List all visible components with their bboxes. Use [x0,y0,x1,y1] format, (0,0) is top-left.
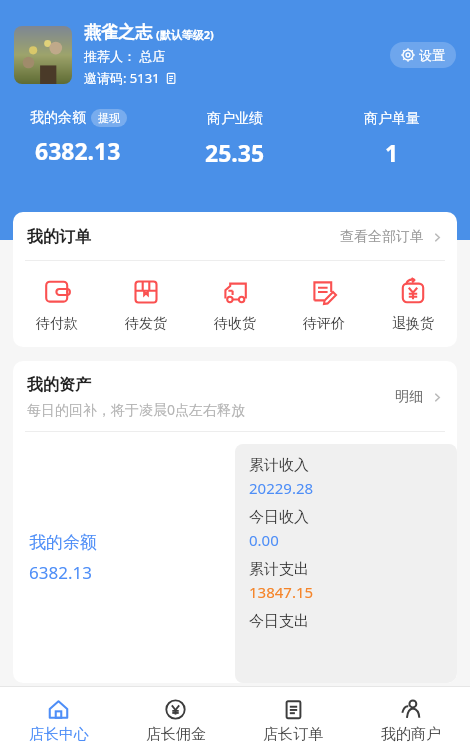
staticText: 累计收入 [249,456,309,475]
staticText: 待收货 [214,315,256,333]
staticText: (默认等级2) [156,27,214,42]
staticText: 明细 [395,388,423,406]
button[interactable]: 我的订单 [13,212,457,260]
staticText: 退换货 [392,315,434,333]
button[interactable]: 待发货 [101,277,190,333]
button[interactable]: 商户单量 [313,109,470,168]
staticText: 25.35 [205,137,265,168]
staticText: 我的订单 [27,227,91,247]
staticText: 推荐人： 总店 [84,47,166,65]
staticText: 今日支出 [249,612,309,631]
button[interactable]: 店长订单 [234,687,352,755]
staticText: 我的资产 [27,375,91,395]
button[interactable]: 我的资产 [13,361,457,431]
staticText: 13847.15 [249,582,314,602]
button[interactable]: 店长中心 [0,687,117,755]
button[interactable]: 待评价 [279,277,368,333]
button[interactable]: 待付款 [13,277,101,333]
staticText: 我的余额 [29,532,97,553]
staticText: 商户业绩 [207,110,263,128]
staticText: 今日收入 [249,508,309,527]
staticText: 待评价 [303,315,345,333]
staticText: 设置 [419,47,445,63]
button[interactable]: 商户业绩 [156,109,313,168]
staticText: 待发货 [125,315,167,333]
staticText: 店长中心 [29,725,89,744]
staticText: 待付款 [36,315,78,333]
staticText: 6382.13 [35,135,121,166]
staticText: 查看全部订单 [340,228,424,246]
staticText: 1 [385,137,399,168]
staticText: 0.00 [249,530,279,550]
staticText: 累计支出 [249,560,309,579]
staticText: 提现 [98,111,120,125]
button[interactable]: 待收货 [190,277,279,333]
staticText: 每日的回补，将于凌晨0点左右释放 [27,400,246,419]
button[interactable]: 退换货 [368,277,457,333]
staticText: 我的商户 [381,725,441,744]
staticText: 6382.13 [29,561,92,584]
button[interactable]: 店长佣金 [117,687,234,755]
staticText: 商户单量 [364,110,420,128]
staticText: 店长佣金 [146,725,206,744]
staticText: 邀请码: 5131 [84,69,160,87]
staticText: 20229.28 [249,478,314,498]
staticText: 我的余额 [30,109,86,127]
staticText: 燕雀之志 [84,22,152,43]
button[interactable]: 设置 [390,42,456,68]
button[interactable]: 提现 [91,109,127,127]
button[interactable]: Avatar [14,26,72,84]
button[interactable]: 我的商户 [352,687,470,755]
staticText: 店长订单 [263,725,323,744]
button[interactable]: Copy invite code [165,72,178,85]
button[interactable]: 我的余额 [0,109,156,166]
